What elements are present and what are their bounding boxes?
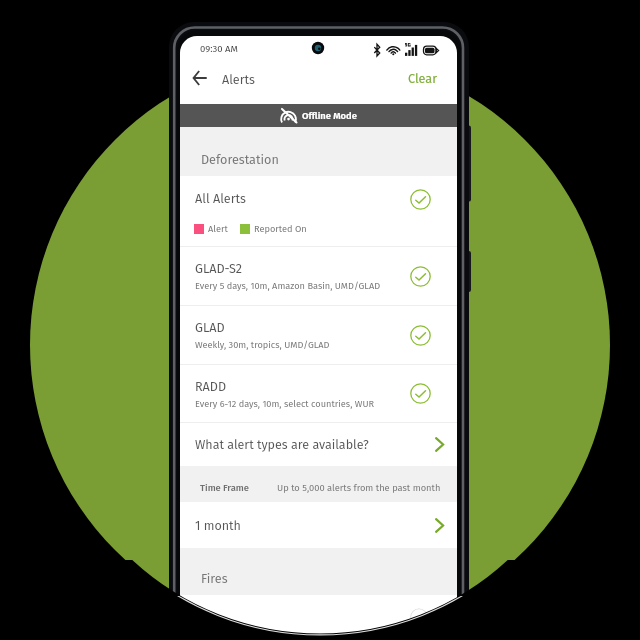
button[interactable]: 1 month (180, 502, 457, 548)
staticText: 09:30 AM (200, 43, 238, 54)
button[interactable]: Back (186, 64, 214, 92)
staticText: Up to 5,000 alerts from the past month (277, 482, 441, 493)
staticText: Clear (408, 71, 438, 86)
staticText: Alerts (222, 72, 255, 87)
staticText: GLAD (195, 320, 225, 335)
button[interactable]: GLAD (180, 306, 457, 364)
staticText: GLAD-S2 (195, 261, 243, 276)
staticText: What alert types are available? (195, 437, 369, 452)
staticText: RADD (195, 379, 227, 394)
staticText: Time Frame (200, 482, 250, 493)
button[interactable]: What alert types are available? (180, 423, 457, 466)
button[interactable]: RADD (180, 365, 457, 422)
staticText: Every 6-12 days, 10m, select countries, … (195, 398, 375, 409)
button[interactable]: GLAD-S2 (180, 247, 457, 305)
button[interactable]: All Alerts (180, 176, 457, 246)
staticText: 1 month (195, 518, 241, 533)
staticText: Fires (201, 571, 228, 586)
staticText: Alert (208, 223, 228, 234)
staticText: Offline Mode (302, 110, 357, 121)
button[interactable]: Clear (408, 71, 438, 86)
staticText: All Alerts (195, 191, 246, 206)
staticText: Deforestation (201, 152, 279, 167)
staticText: Weekly, 30m, tropics, UMD/GLAD (195, 339, 330, 350)
button[interactable]: Add area of interest (410, 608, 428, 626)
staticText: Reported On (254, 223, 307, 234)
staticText: Every 5 days, 10m, Amazon Basin, UMD/GLA… (195, 280, 381, 291)
